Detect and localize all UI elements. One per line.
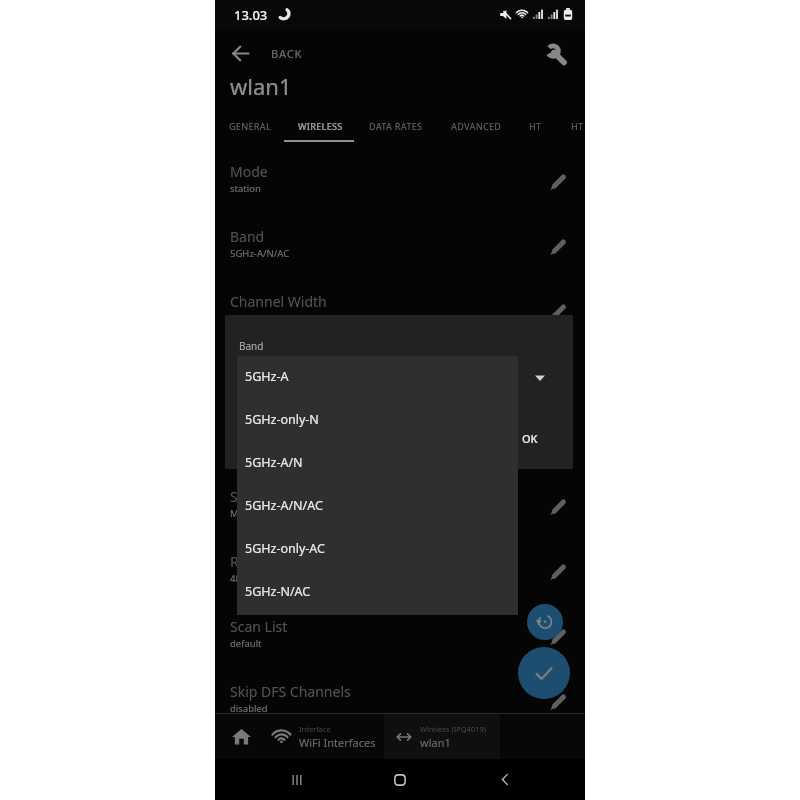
button[interactable]: Home xyxy=(215,714,267,759)
button[interactable]: Mode xyxy=(215,156,585,221)
staticText: Radio Name xyxy=(230,552,311,571)
staticText: auto xyxy=(230,377,251,390)
button[interactable]: HT xyxy=(556,109,598,143)
button[interactable]: Back xyxy=(481,759,529,800)
button[interactable]: 5GHz-A/N/AC xyxy=(237,485,518,528)
button[interactable]: Home xyxy=(376,759,424,800)
button[interactable]: Revert xyxy=(527,604,563,640)
button[interactable]: Interface xyxy=(267,714,384,759)
staticText: MikroTik-48A9BB xyxy=(230,507,307,520)
staticText: HT xyxy=(529,120,542,132)
button[interactable]: Frequency xyxy=(215,351,585,416)
staticText: Scan List xyxy=(230,617,288,636)
button[interactable]: 5GHz-A xyxy=(237,356,518,399)
staticText: WIRELESS xyxy=(298,120,343,132)
staticText: station xyxy=(230,182,261,195)
button[interactable]: Wireless (IPQ4019) xyxy=(384,714,500,759)
staticText: wlan1 xyxy=(230,71,292,101)
staticText: 5GHz-only-N xyxy=(245,411,319,428)
button[interactable]: ADVANCED xyxy=(442,109,510,143)
staticText: wlan1 xyxy=(420,735,451,750)
staticText: WiFi Interfaces xyxy=(299,735,376,750)
staticText: 5GHz-A xyxy=(245,368,289,385)
staticText: OK xyxy=(522,431,538,446)
staticText: default xyxy=(230,637,262,650)
staticText: Interface xyxy=(299,724,331,734)
button[interactable]: Apply xyxy=(518,647,570,699)
staticText: 20/40/80MHz-eCee xyxy=(230,312,315,325)
staticText: GENERAL xyxy=(229,120,272,132)
button[interactable]: BACK xyxy=(215,34,585,72)
staticText: HT xyxy=(571,120,584,132)
staticText: Channel Width xyxy=(230,292,327,311)
button[interactable]: 5GHz-only-AC xyxy=(237,528,518,571)
button[interactable]: HT xyxy=(514,109,556,143)
button[interactable]: Settings xyxy=(543,41,569,67)
button[interactable]: Recents xyxy=(273,759,321,800)
staticText: ADVANCED xyxy=(451,120,502,132)
staticText: 5GHz-A/N/AC xyxy=(230,247,290,260)
button[interactable]: SSID xyxy=(215,481,585,546)
button[interactable]: Radio Name xyxy=(215,546,585,611)
staticText: Band xyxy=(230,227,265,246)
staticText: 5GHz-A/N xyxy=(245,454,303,471)
button[interactable]: 5GHz-only-N xyxy=(237,399,518,442)
button[interactable]: GENERAL xyxy=(215,109,285,143)
staticText: SSID xyxy=(230,487,261,506)
staticText: 48A9BB xyxy=(230,572,265,585)
button[interactable]: DATA RATES xyxy=(358,109,434,143)
button[interactable]: OK xyxy=(509,423,551,453)
staticText: Channel xyxy=(230,422,285,441)
staticText: 5GHz-A/N/AC xyxy=(245,497,323,514)
staticText: DATA RATES xyxy=(369,120,423,132)
staticText: disabled xyxy=(230,702,268,715)
button[interactable]: Skip DFS Channels xyxy=(215,676,585,741)
staticText: Frequency xyxy=(230,357,299,376)
button[interactable]: Channel xyxy=(215,416,585,481)
button[interactable]: 5GHz-A/N xyxy=(237,442,518,485)
staticText: 5GHz-only-AC xyxy=(245,540,325,557)
staticText: Skip DFS Channels xyxy=(230,682,351,701)
button[interactable]: WIRELESS xyxy=(285,109,355,143)
staticText: 13.03 xyxy=(234,6,268,24)
staticText: 5GHz-N/AC xyxy=(245,583,311,600)
staticText: Wireless (IPQ4019) xyxy=(420,724,486,734)
staticText: BACK xyxy=(271,46,303,61)
button[interactable]: 5GHz-N/AC xyxy=(237,571,518,614)
button[interactable]: Channel Width xyxy=(215,286,585,351)
staticText: Band xyxy=(239,339,264,353)
staticText: auto xyxy=(230,442,251,455)
staticText: Mode xyxy=(230,162,268,181)
button[interactable]: Band xyxy=(215,221,585,286)
button[interactable]: Scan List xyxy=(215,611,585,676)
